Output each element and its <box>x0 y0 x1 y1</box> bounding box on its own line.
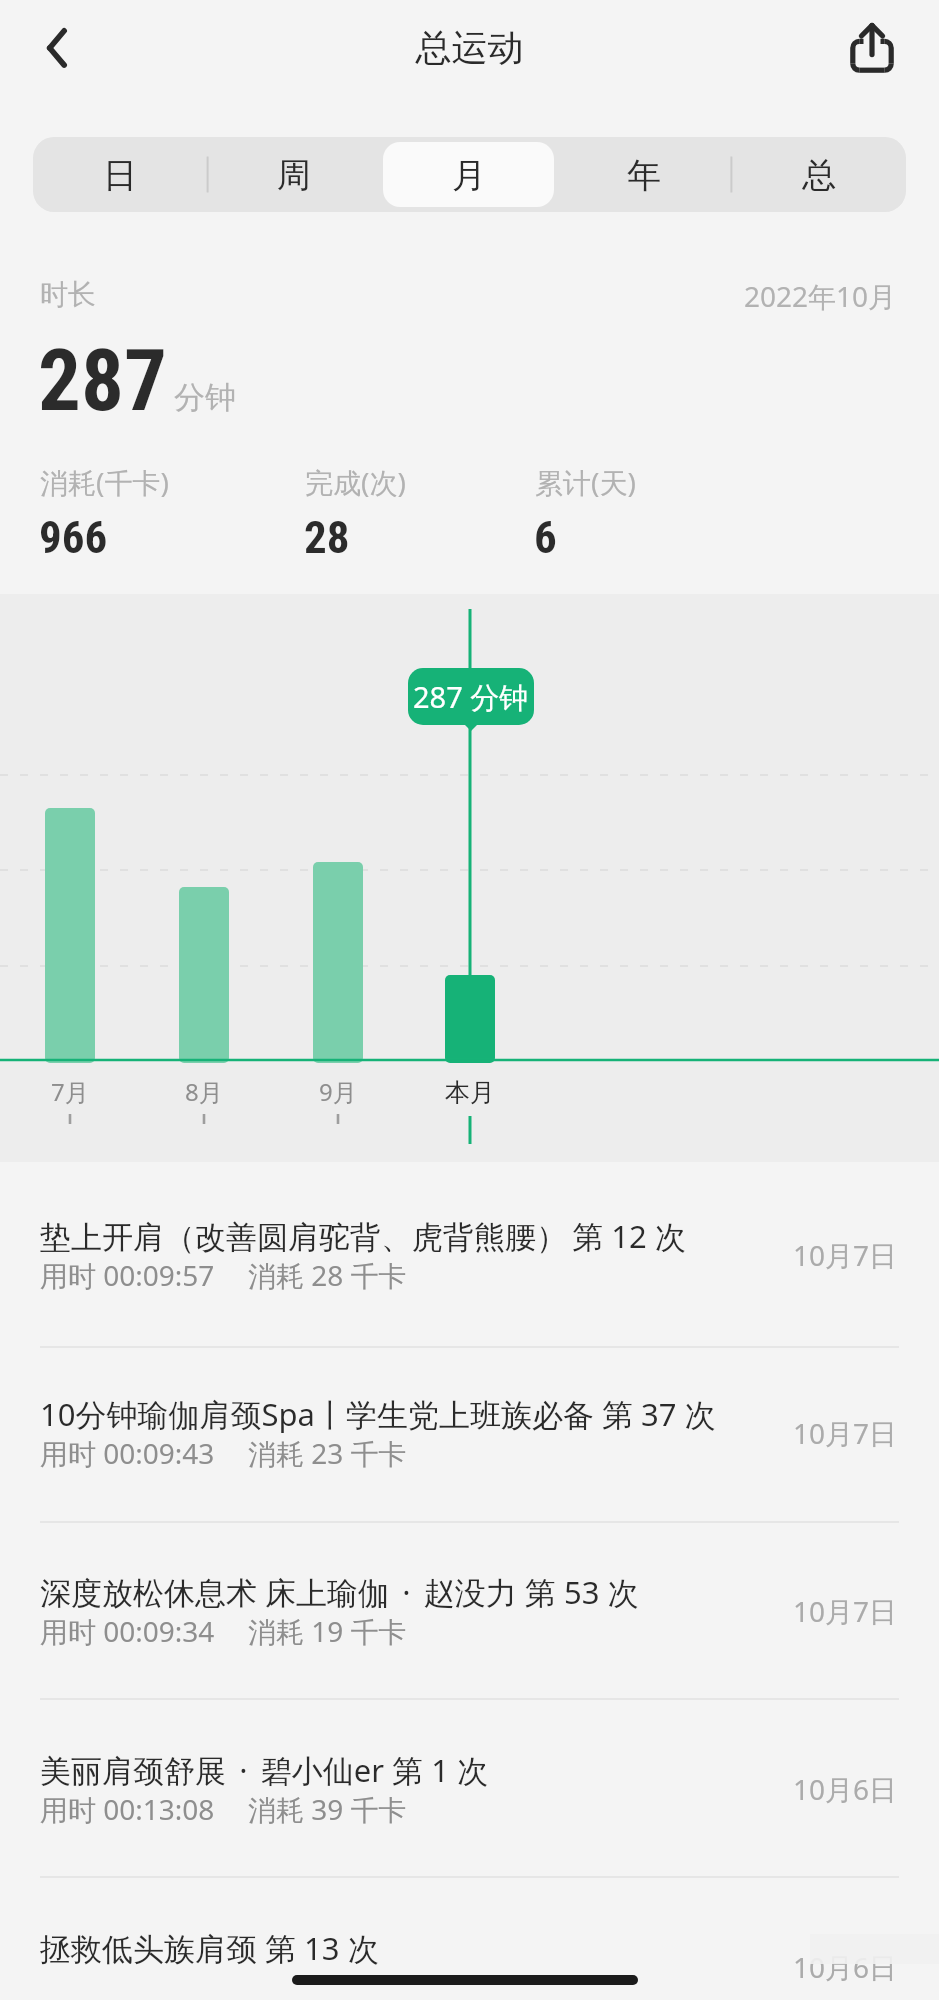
staticText: 用时 00:09:43 <box>40 1434 215 1472</box>
staticText: 时长 <box>40 277 96 312</box>
staticText: 累计(天) <box>535 463 636 501</box>
button[interactable]: 10分钟瑜伽肩颈Spa丨学生党上班族必备 第 37 次 <box>0 1340 939 1518</box>
button[interactable]: 深度放松休息术 床上瑜伽 · 赵没力 第 53 次 <box>0 1518 939 1696</box>
staticText: 日 <box>103 154 137 197</box>
staticText: 完成(次) <box>305 463 406 501</box>
staticText: 拯救低头族肩颈 第 13 次 <box>40 1927 379 1969</box>
button[interactable]: 美丽肩颈舒展 · 碧小仙er 第 1 次 <box>0 1696 939 1874</box>
button[interactable]: 周 <box>209 142 379 207</box>
staticText: 10月7日 <box>0 1592 897 1630</box>
staticText: 287 <box>38 331 167 431</box>
staticText: 10分钟瑜伽肩颈Spa丨学生党上班族必备 第 37 次 <box>40 1393 716 1435</box>
staticText: 10月6日 <box>0 1948 897 1986</box>
staticText: 总运动 <box>0 25 939 70</box>
button[interactable]: Share <box>828 4 916 92</box>
staticText: 垫上开肩（改善圆肩驼背、虎背熊腰） 第 12 次 <box>40 1215 686 1257</box>
button[interactable]: Back <box>12 8 96 92</box>
staticText: 8月 <box>185 1075 223 1108</box>
button[interactable]: 总 <box>733 142 904 207</box>
staticText: 10月7日 <box>0 1236 897 1274</box>
staticText: 消耗(千卡) <box>40 463 169 501</box>
staticText: 用时 00:09:34 <box>40 1612 215 1650</box>
staticText: 本月 <box>445 1077 495 1108</box>
button[interactable]: 年 <box>558 142 729 207</box>
staticText: 月 <box>452 154 486 197</box>
staticText: 消耗 19 千卡 <box>248 1612 407 1650</box>
staticText: 28 <box>304 511 350 564</box>
staticText: 用时 00:09:57 <box>40 1256 215 1294</box>
staticText: 总 <box>802 154 836 197</box>
button[interactable]: 日 <box>35 142 205 207</box>
staticText: 消耗 28 千卡 <box>248 1256 407 1294</box>
staticText: 消耗 23 千卡 <box>248 1434 407 1472</box>
staticText: 10月6日 <box>0 1770 897 1808</box>
button[interactable]: 拯救低头族肩颈 第 13 次 <box>0 1874 939 2000</box>
button[interactable]: 垫上开肩（改善圆肩驼背、虎背熊腰） 第 12 次 <box>0 1162 939 1340</box>
staticText: 6 <box>534 511 557 564</box>
staticText: 7月 <box>51 1075 89 1108</box>
staticText: 966 <box>39 511 108 564</box>
staticText: 消耗 39 千卡 <box>248 1790 407 1828</box>
staticText: 287 分钟 <box>413 677 529 717</box>
staticText: 年 <box>627 154 661 197</box>
staticText: 周 <box>277 154 311 197</box>
staticText: 美丽肩颈舒展 · 碧小仙er 第 1 次 <box>40 1749 488 1791</box>
staticText: 9月 <box>319 1075 357 1108</box>
staticText: 分钟 <box>174 378 236 417</box>
staticText: 用时 00:13:08 <box>40 1790 215 1828</box>
staticText: 2022年10月 <box>40 277 896 315</box>
staticText: 10月7日 <box>0 1414 897 1452</box>
button[interactable]: 月 <box>383 142 554 207</box>
staticText: 深度放松休息术 床上瑜伽 · 赵没力 第 53 次 <box>40 1571 639 1613</box>
